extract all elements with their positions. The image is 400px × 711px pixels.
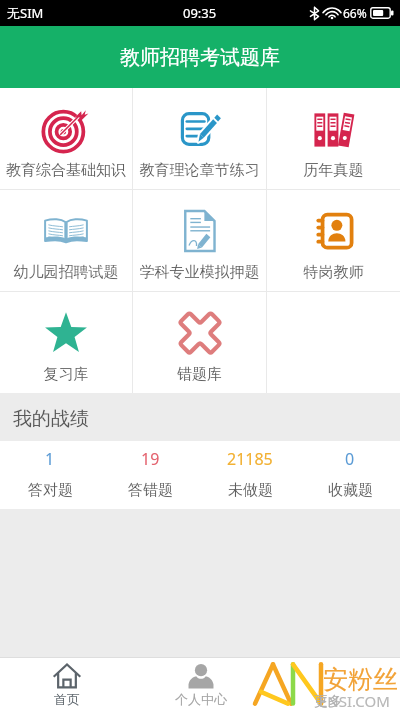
staticText: 09:35 — [183, 4, 217, 22]
button[interactable]: 0 — [300, 441, 400, 509]
button[interactable]: 复习库 — [0, 292, 132, 393]
button[interactable]: 首页 — [0, 658, 134, 711]
staticText: 收藏题 — [328, 481, 373, 500]
staticText: 教育综合基础知识 — [0, 161, 132, 180]
button[interactable]: 错题库 — [133, 292, 266, 393]
button[interactable]: 历年真题 — [267, 88, 400, 189]
staticText: 无SIM — [7, 4, 44, 22]
staticText: 个人中心 — [175, 691, 227, 707]
staticText: 幼儿园招聘试题 — [0, 263, 132, 282]
staticText: 教师招聘考试题库 — [120, 45, 280, 70]
staticText: 更多 — [314, 693, 342, 711]
button[interactable]: 教育综合基础知识 — [0, 88, 132, 189]
staticText: 答错题 — [128, 481, 173, 500]
staticText: 特岗教师 — [267, 263, 400, 282]
staticText: 历年真题 — [267, 161, 400, 180]
staticText: 复习库 — [0, 365, 132, 384]
staticText: 首页 — [54, 691, 80, 707]
staticText: 我的战绩 — [13, 407, 89, 431]
staticText: 答对题 — [28, 481, 73, 500]
staticText: 错题库 — [133, 365, 266, 384]
staticText: ENSI.COM — [319, 691, 390, 711]
button[interactable]: 1 — [0, 441, 100, 509]
staticText: 0 — [345, 448, 355, 470]
staticText: 19 — [141, 448, 160, 470]
button[interactable]: 特岗教师 — [267, 190, 400, 291]
staticText: 66% — [343, 5, 367, 21]
button[interactable]: 21185 — [200, 441, 300, 509]
staticText: 未做题 — [228, 481, 273, 500]
staticText: 安粉丝 — [323, 664, 398, 695]
staticText: 学科专业模拟押题 — [133, 263, 266, 282]
button[interactable]: 学科专业模拟押题 — [133, 190, 266, 291]
staticText: 21185 — [227, 448, 273, 470]
button[interactable]: 个人中心 — [134, 658, 267, 711]
staticText: 1 — [45, 448, 55, 470]
button[interactable]: 教育理论章节练习 — [133, 88, 266, 189]
staticText: 教育理论章节练习 — [133, 161, 266, 180]
button[interactable]: 19 — [100, 441, 200, 509]
button[interactable]: 幼儿园招聘试题 — [0, 190, 132, 291]
